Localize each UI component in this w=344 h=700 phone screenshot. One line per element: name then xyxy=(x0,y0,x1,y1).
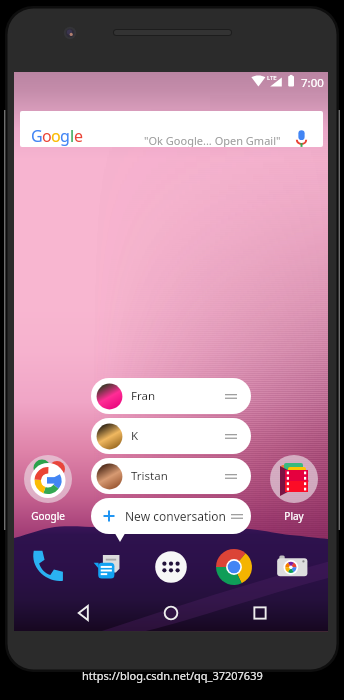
staticText: New conversation xyxy=(125,508,227,524)
staticText: LTE xyxy=(267,74,277,82)
staticText: https://blog.csdn.net/qq_37207639 xyxy=(82,668,263,683)
staticText: g xyxy=(60,125,70,147)
staticText: Google xyxy=(31,509,65,523)
staticText: Play xyxy=(284,509,304,523)
staticText: l xyxy=(70,125,74,147)
staticText: K xyxy=(131,428,139,444)
staticText: 7:00 xyxy=(301,75,324,91)
button[interactable]: Play xyxy=(256,455,332,523)
staticText: "Ok Google... Open Gmail" xyxy=(144,133,281,147)
button[interactable]: Camera xyxy=(275,549,311,585)
staticText: Fran xyxy=(131,388,156,404)
button[interactable]: Fran xyxy=(91,378,251,414)
staticText: G xyxy=(31,125,42,147)
staticText: Tristan xyxy=(131,468,168,484)
button[interactable]: Messages xyxy=(91,549,127,585)
button[interactable]: Tristan xyxy=(91,458,251,494)
button[interactable]: Back xyxy=(72,601,96,625)
button[interactable]: G xyxy=(20,111,323,147)
staticText: o xyxy=(42,125,51,147)
button[interactable]: New conversation xyxy=(91,498,251,534)
staticText: o xyxy=(51,125,60,147)
button[interactable]: Google xyxy=(10,455,86,523)
button[interactable]: All apps xyxy=(153,549,189,585)
button[interactable]: Chrome xyxy=(216,549,252,585)
button[interactable]: K xyxy=(91,418,251,454)
button[interactable]: Recents xyxy=(248,601,272,625)
staticText: e xyxy=(74,125,83,147)
button[interactable]: Phone xyxy=(28,549,64,585)
button[interactable]: Home xyxy=(159,601,183,625)
